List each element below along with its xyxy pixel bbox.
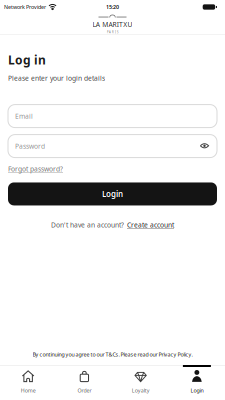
- staticText: Home: [21, 387, 36, 394]
- button[interactable]: [200, 143, 210, 149]
- staticText: By continuing you agree to our T&Cs. Ple…: [32, 351, 192, 358]
- staticText: Don't have an account?: [51, 220, 124, 229]
- staticText: Email: [15, 112, 33, 121]
- staticText: Please enter your login details: [8, 74, 105, 83]
- staticText: Login: [102, 189, 123, 199]
- button[interactable]: Password: [8, 135, 217, 158]
- staticText: Login: [190, 387, 203, 394]
- staticText: Loyalty: [132, 387, 150, 394]
- button[interactable]: Create account: [127, 220, 174, 229]
- button[interactable]: Forgot password?: [8, 165, 63, 173]
- button[interactable]: Email: [8, 105, 217, 128]
- staticText: LA MARITXU: [93, 20, 132, 29]
- button[interactable]: Login: [8, 182, 217, 205]
- staticText: Log in: [8, 52, 46, 68]
- staticText: Order: [77, 387, 91, 394]
- staticText: 15:20: [106, 3, 119, 11]
- button[interactable]: Loyalty: [112, 365, 169, 394]
- staticText: Forgot password?: [8, 165, 63, 173]
- staticText: Create account: [127, 220, 174, 229]
- staticText: Password: [15, 142, 45, 151]
- staticText: PARIS: [107, 30, 118, 34]
- button[interactable]: Home: [0, 365, 56, 394]
- button[interactable]: Login: [169, 365, 225, 394]
- staticText: Network Provider: [4, 3, 46, 11]
- button[interactable]: Order: [56, 365, 112, 394]
